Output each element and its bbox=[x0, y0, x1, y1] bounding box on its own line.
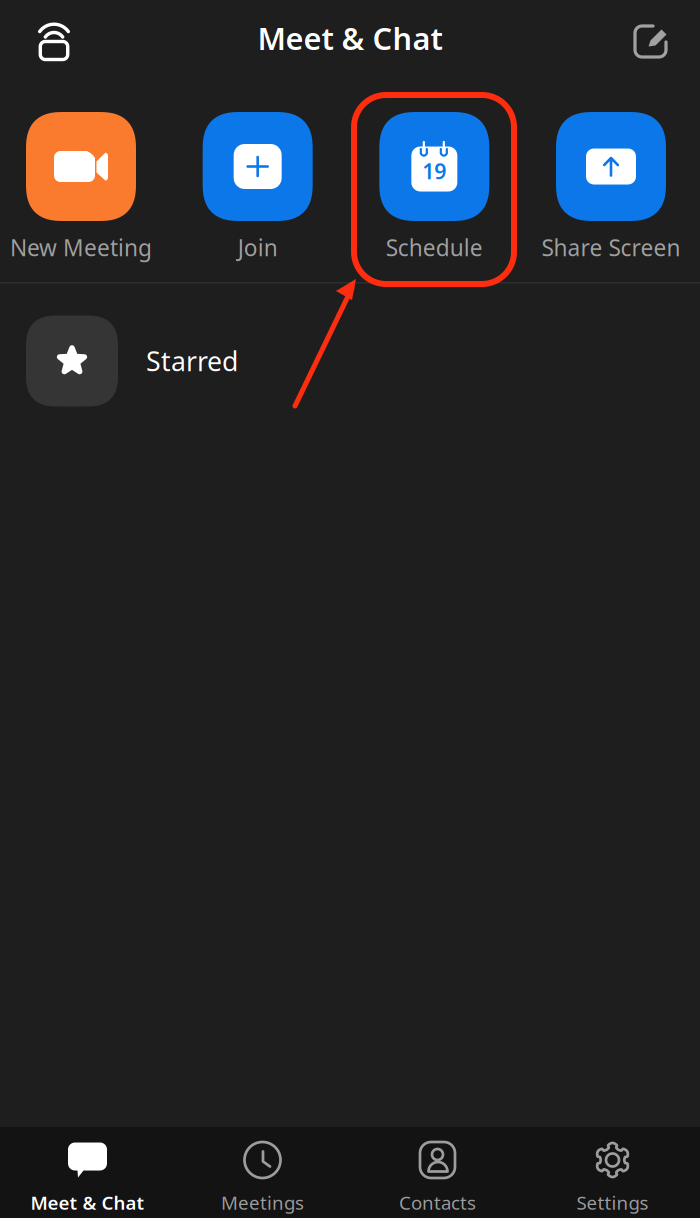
button[interactable]: Meet & Chat bbox=[0, 1127, 175, 1218]
button[interactable]: Meetings bbox=[175, 1127, 350, 1218]
button[interactable]: New message bbox=[618, 9, 682, 73]
button[interactable]: New Meeting bbox=[26, 112, 136, 264]
button[interactable]: Contacts bbox=[350, 1127, 525, 1218]
staticText: Schedule bbox=[386, 232, 483, 262]
staticText: Meet & Chat bbox=[257, 18, 442, 58]
staticText: Contacts bbox=[399, 1190, 476, 1215]
button[interactable]: Settings bbox=[525, 1127, 700, 1218]
staticText: Join bbox=[238, 232, 278, 262]
button[interactable]: Share Screen bbox=[556, 112, 666, 264]
staticText: Starred bbox=[146, 343, 238, 379]
button[interactable]: Screen share bbox=[22, 9, 86, 73]
staticText: Settings bbox=[576, 1190, 648, 1215]
button[interactable]: Starred bbox=[0, 283, 700, 430]
staticText: Meetings bbox=[221, 1190, 304, 1215]
button[interactable]: Join bbox=[203, 112, 313, 264]
staticText: 19 bbox=[422, 157, 446, 185]
staticText: New Meeting bbox=[10, 232, 152, 262]
button[interactable]: 19 bbox=[379, 112, 489, 264]
staticText: Share Screen bbox=[541, 232, 680, 262]
staticText: Meet & Chat bbox=[30, 1190, 144, 1215]
